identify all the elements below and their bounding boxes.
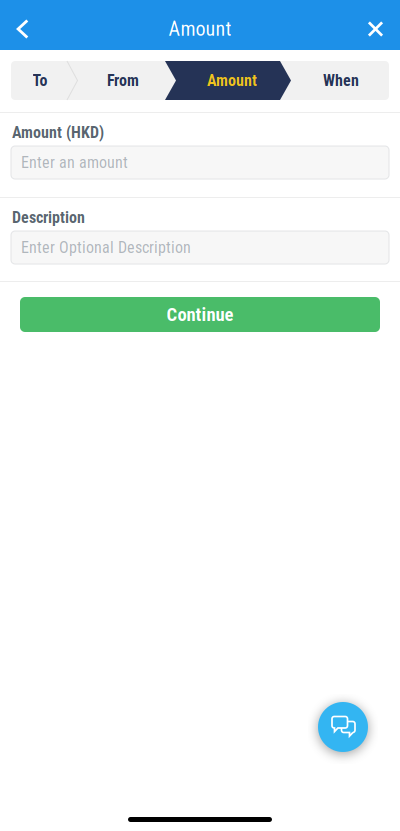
staticText: To (32, 71, 47, 90)
staticText: Amount (168, 17, 231, 41)
button[interactable]: Continue (20, 297, 380, 332)
staticText: From (107, 71, 139, 90)
button[interactable]: When (301, 61, 381, 100)
staticText: Amount (HKD) (12, 123, 104, 142)
staticText: When (323, 71, 359, 90)
staticText: Enter Optional Description (21, 238, 191, 257)
button[interactable]: Enter Optional Description (11, 231, 389, 264)
staticText: Enter an amount (21, 153, 128, 172)
staticText: Description (12, 208, 85, 227)
button[interactable]: Chat support (318, 702, 368, 752)
staticText: Amount (207, 71, 257, 90)
button[interactable]: Close (353, 7, 398, 51)
staticText: Continue (166, 304, 233, 325)
button[interactable]: To (0, 61, 80, 100)
button[interactable]: Enter an amount (11, 146, 389, 179)
button[interactable]: From (83, 61, 163, 100)
button[interactable]: Back (0, 7, 45, 51)
